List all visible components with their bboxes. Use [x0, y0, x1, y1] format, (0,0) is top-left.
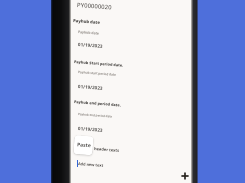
- staticText: 01/19/2023: [78, 83, 103, 91]
- staticText: Payhub start period date: [78, 70, 117, 77]
- staticText: PY00000020: [77, 1, 112, 12]
- button[interactable]: Add: [178, 169, 191, 182]
- staticText: Payhub end period date: [78, 112, 113, 119]
- staticText: Add new text: [78, 161, 104, 168]
- staticText: 01/19/2023: [78, 125, 103, 133]
- staticText: 01/19/2023: [78, 41, 103, 49]
- staticText: Payhub end period date.: [74, 99, 121, 107]
- staticText: Payhub date: [78, 29, 100, 36]
- staticText: Payhub Start period date.: [74, 59, 124, 68]
- button[interactable]: Paste: [73, 135, 94, 155]
- staticText: header texts: [94, 146, 120, 153]
- staticText: Payhub date: [73, 18, 101, 26]
- staticText: Paste: [77, 141, 91, 149]
